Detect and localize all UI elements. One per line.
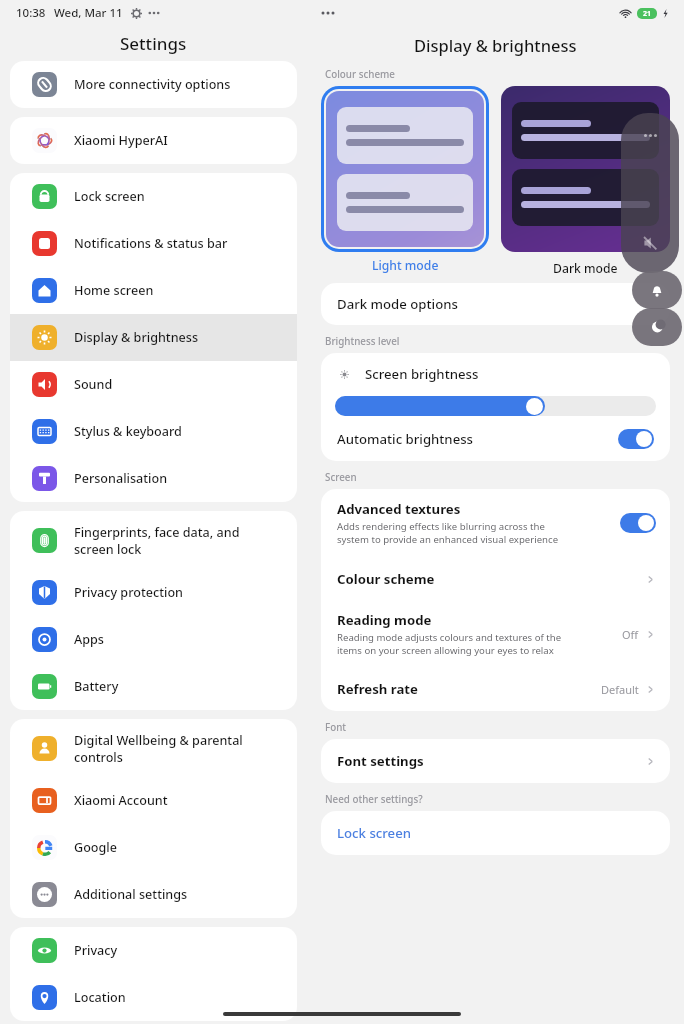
staticText: Additional settings [74, 886, 188, 903]
button[interactable]: Sound [10, 361, 297, 408]
button[interactable]: Advanced textures [321, 489, 670, 557]
staticText: Privacy [74, 942, 118, 959]
button[interactable]: More connectivity options [10, 61, 297, 108]
staticText: Screen [325, 471, 357, 484]
button[interactable]: Personalisation [10, 455, 297, 502]
staticText: Default [601, 682, 639, 697]
button[interactable]: Google [10, 824, 297, 871]
staticText: Automatic brightness [337, 430, 474, 448]
staticText: Dark mode [553, 260, 618, 277]
staticText: Reading mode [337, 611, 432, 629]
staticText: Colour scheme [325, 68, 395, 81]
staticText: Dark mode options [337, 295, 458, 313]
staticText: 10:38 [16, 5, 46, 21]
button[interactable]: Dark mode [501, 86, 670, 277]
button[interactable]: Display & brightness [10, 314, 297, 361]
button[interactable]: Xiaomi Account [10, 777, 297, 824]
button[interactable]: Notifications [632, 271, 682, 309]
button[interactable]: Font settings [321, 739, 670, 783]
button[interactable]: Privacy [10, 927, 297, 974]
staticText: Font [325, 721, 347, 734]
staticText: Sound [74, 376, 113, 393]
staticText: Home screen [74, 282, 154, 299]
staticText: Advanced textures [337, 500, 461, 518]
staticText: Refresh rate [337, 680, 418, 698]
staticText: Apps [74, 631, 104, 648]
button[interactable]: Reading mode [321, 601, 670, 667]
staticText: 21 [643, 9, 652, 19]
button[interactable]: Home screen [10, 267, 297, 314]
button[interactable]: Lock screen [10, 173, 297, 220]
staticText: Google [74, 839, 117, 856]
button[interactable]: Xiaomi HyperAI [10, 117, 297, 164]
button[interactable]: Stylus & keyboard [10, 408, 297, 455]
button[interactable]: Battery [10, 663, 297, 710]
button[interactable]: Do not disturb [632, 308, 682, 346]
staticText: Display & brightness [414, 34, 577, 56]
staticText: Screen brightness [365, 365, 479, 383]
staticText: Colour scheme [337, 570, 435, 588]
staticText: Reading mode adjusts colours and texture… [337, 631, 562, 657]
button[interactable]: Privacy protection [10, 569, 297, 616]
staticText: Off [622, 627, 639, 642]
staticText: Xiaomi Account [74, 792, 168, 809]
staticText: Location [74, 989, 126, 1006]
staticText: Privacy protection [74, 584, 183, 601]
staticText: More connectivity options [74, 76, 231, 93]
button[interactable] [335, 396, 656, 416]
staticText: Adds rendering effects like blurring acr… [337, 520, 559, 546]
button[interactable]: Lock screen [321, 811, 670, 855]
staticText: Digital Wellbeing & parental controls [74, 732, 243, 765]
staticText: Fingerprints, face data, and screen lock [74, 524, 240, 557]
button[interactable]: Colour scheme [321, 557, 670, 601]
staticText: Personalisation [74, 470, 168, 487]
button[interactable]: Refresh rate [321, 667, 670, 711]
staticText: Lock screen [337, 824, 411, 842]
button[interactable]: Additional settings [10, 871, 297, 918]
staticText: Battery [74, 678, 119, 695]
staticText: Notifications & status bar [74, 235, 228, 252]
staticText: Display & brightness [74, 329, 199, 346]
button[interactable]: Floating window [621, 113, 679, 273]
staticText: Font settings [337, 752, 424, 770]
staticText: Xiaomi HyperAI [74, 132, 168, 149]
staticText: Brightness level [325, 335, 400, 348]
button[interactable]: Toggle [620, 513, 656, 533]
button[interactable]: Location [10, 974, 297, 1021]
staticText: Light mode [372, 257, 439, 274]
button[interactable]: Light mode [321, 86, 489, 274]
button[interactable]: Dark mode options [321, 283, 670, 325]
button[interactable]: Apps [10, 616, 297, 663]
staticText: Wed, Mar 11 [54, 5, 123, 21]
button[interactable]: Automatic brightness [321, 417, 670, 461]
staticText: Settings [120, 32, 187, 55]
button[interactable]: Toggle [618, 429, 654, 449]
staticText: Need other settings? [325, 793, 423, 806]
staticText: Stylus & keyboard [74, 423, 182, 440]
button[interactable]: Fingerprints, face data, and screen lock [10, 511, 297, 569]
staticText: Lock screen [74, 188, 145, 205]
button[interactable]: Notifications & status bar [10, 220, 297, 267]
button[interactable]: Digital Wellbeing & parental controls [10, 719, 297, 777]
